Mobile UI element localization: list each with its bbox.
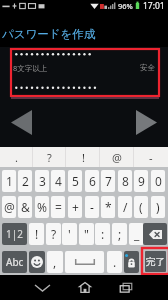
staticText: 3 bbox=[39, 173, 46, 189]
button[interactable]: Recent apps bbox=[112, 275, 140, 300]
button[interactable]: 完了 bbox=[142, 248, 168, 274]
staticText: . bbox=[15, 150, 18, 165]
button[interactable]: . bbox=[107, 251, 122, 273]
button[interactable]: 7 bbox=[101, 170, 115, 192]
button[interactable]: 8 bbox=[118, 170, 132, 192]
button[interactable]: / bbox=[118, 196, 132, 218]
staticText: 96% bbox=[118, 1, 133, 11]
button[interactable]: 4 bbox=[51, 170, 65, 192]
button[interactable]: 9 bbox=[134, 170, 148, 192]
button[interactable]: Backspace bbox=[143, 223, 167, 245]
button[interactable]: , bbox=[47, 251, 63, 273]
button[interactable]: ! bbox=[29, 223, 44, 245]
button[interactable]: 5 bbox=[68, 170, 82, 192]
staticText: : bbox=[101, 226, 105, 242]
button[interactable]: 0 bbox=[151, 170, 165, 192]
staticText: . bbox=[113, 254, 117, 270]
staticText: ? bbox=[47, 150, 52, 165]
staticText: & bbox=[21, 199, 30, 215]
button[interactable]: _ bbox=[129, 223, 144, 245]
staticText: 6 bbox=[89, 173, 96, 189]
button[interactable]: . bbox=[0, 147, 33, 167]
button[interactable]: 2 bbox=[18, 170, 32, 192]
staticText: ) bbox=[156, 199, 160, 215]
button[interactable]: ) bbox=[151, 196, 165, 218]
staticText: @ bbox=[112, 150, 122, 165]
staticText: ? bbox=[51, 226, 57, 242]
button[interactable]: ! bbox=[66, 147, 100, 167]
button[interactable]: Home bbox=[71, 275, 99, 300]
staticText: ; bbox=[118, 226, 122, 242]
staticText: - bbox=[149, 150, 153, 165]
button[interactable]: Alphabet bbox=[2, 251, 27, 273]
staticText: * bbox=[105, 199, 112, 215]
button[interactable]: ? bbox=[33, 147, 66, 167]
staticText: - bbox=[90, 199, 94, 215]
staticText: " bbox=[84, 226, 89, 242]
staticText: ! bbox=[35, 226, 39, 242]
staticText: Abc bbox=[6, 255, 24, 269]
staticText: 1 bbox=[6, 173, 13, 189]
staticText: 安全 bbox=[140, 63, 155, 72]
button[interactable]: @ bbox=[100, 147, 134, 167]
button[interactable]: 1 bbox=[2, 170, 16, 192]
staticText: ! bbox=[82, 150, 85, 165]
button[interactable]: 3 bbox=[35, 170, 49, 192]
staticText: + bbox=[72, 199, 79, 215]
button[interactable]: Emoji bbox=[29, 251, 45, 273]
button[interactable]: & bbox=[18, 196, 32, 218]
staticText: パスワードを作成 bbox=[2, 27, 96, 41]
staticText: 1|2 bbox=[6, 227, 23, 241]
button[interactable]: + bbox=[68, 196, 82, 218]
button[interactable]: - bbox=[85, 196, 99, 218]
staticText: 4 bbox=[55, 173, 62, 189]
button[interactable]: Lock bbox=[124, 251, 139, 273]
button[interactable]: * bbox=[101, 196, 115, 218]
staticText: ' bbox=[68, 226, 71, 242]
button[interactable]: - bbox=[134, 147, 168, 167]
button[interactable]: Previous bbox=[11, 110, 32, 135]
staticText: 7 bbox=[105, 173, 112, 189]
button[interactable]: % bbox=[35, 196, 49, 218]
staticText: = bbox=[55, 199, 62, 215]
button[interactable]: Symbols bbox=[2, 223, 27, 245]
staticText: % bbox=[37, 199, 47, 215]
staticText: 完了 bbox=[146, 256, 165, 268]
button[interactable]: ; bbox=[112, 223, 127, 245]
staticText: 8文字以上 bbox=[13, 63, 48, 73]
button[interactable]: ( bbox=[134, 196, 148, 218]
staticText: ( bbox=[139, 199, 143, 215]
staticText: 5 bbox=[72, 173, 79, 189]
staticText: 2 bbox=[22, 173, 29, 189]
staticText: @ bbox=[4, 199, 15, 215]
staticText: 8 bbox=[122, 173, 129, 189]
staticText: 17:01 bbox=[143, 0, 165, 11]
button[interactable]: : bbox=[95, 223, 110, 245]
button[interactable]: Space bbox=[65, 251, 104, 273]
staticText: / bbox=[123, 199, 128, 215]
button[interactable]: Hide keyboard bbox=[28, 275, 56, 300]
button[interactable]: " bbox=[79, 223, 94, 245]
staticText: 9 bbox=[138, 173, 145, 189]
button[interactable]: ' bbox=[62, 223, 77, 245]
button[interactable]: ? bbox=[46, 223, 61, 245]
staticText: , bbox=[53, 254, 57, 270]
staticText: _ bbox=[134, 226, 140, 242]
button[interactable]: @ bbox=[2, 196, 16, 218]
button[interactable] bbox=[11, 49, 159, 96]
staticText: 0 bbox=[155, 173, 162, 189]
button[interactable]: Next bbox=[136, 110, 157, 135]
button[interactable]: 6 bbox=[85, 170, 99, 192]
button[interactable]: = bbox=[51, 196, 65, 218]
